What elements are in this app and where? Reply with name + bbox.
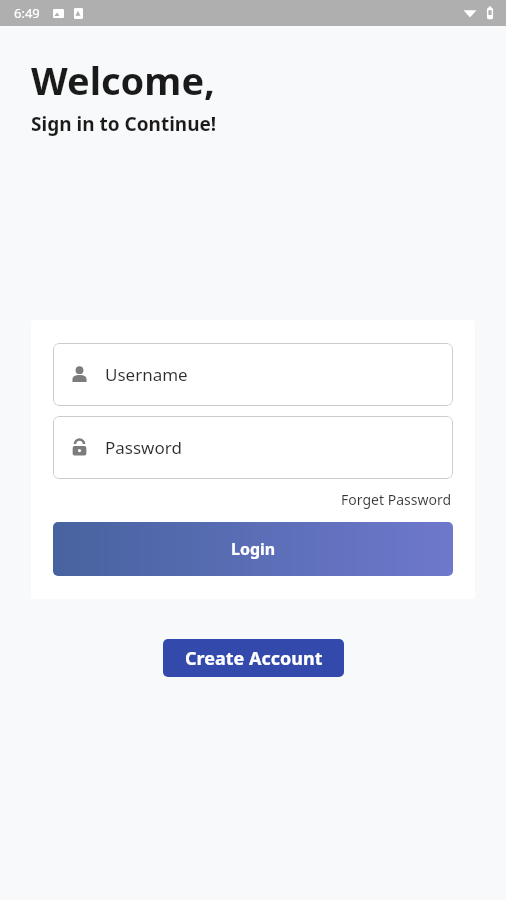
button[interactable]: Create Account [163, 639, 344, 677]
staticText: Password [105, 436, 182, 459]
staticText: Forget Password [341, 490, 451, 509]
button[interactable]: Username [53, 343, 453, 406]
staticText: Welcome, [31, 54, 215, 106]
staticText: Login [231, 538, 276, 560]
staticText: Sign in to Continue! [31, 111, 217, 137]
button[interactable]: Password [53, 416, 453, 479]
button[interactable]: Forget Password [339, 488, 453, 511]
staticText: 6:49 [14, 4, 40, 22]
staticText: Username [105, 363, 188, 386]
staticText: Create Account [185, 646, 323, 671]
button[interactable]: Login [53, 522, 453, 576]
